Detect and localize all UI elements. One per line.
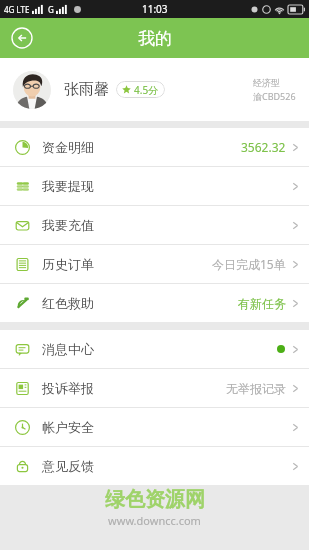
staticText: 我要提现 [42,178,94,194]
staticText: 帐户安全 [42,419,94,435]
staticText: 意见反馈 [42,458,94,474]
staticText: 历史订单 [42,256,94,272]
button[interactable]: 历史订单 [0,245,309,283]
button[interactable]: 消息中心 [0,330,309,368]
staticText: 消息中心 [42,341,94,357]
staticText: 渝CBD526 [253,90,296,102]
button[interactable]: 意见反馈 [0,447,309,485]
staticText: 红色救助 [42,295,94,311]
button[interactable]: 帐户安全 [0,408,309,446]
staticText: 资金明细 [42,139,94,155]
staticText: 经济型 [253,77,280,88]
staticText: 我要充值 [42,217,94,233]
staticText: 4G LTE [4,4,30,15]
staticText: G [48,4,54,15]
staticText: 绿色资源网 [105,487,205,512]
staticText: 3562.32 [241,139,286,155]
staticText: 今日完成15单 [212,256,286,272]
staticText: 有新任务 [238,296,286,311]
staticText: 11:03 [142,2,168,16]
staticText: 我的 [138,28,172,49]
staticText: 4.5分 [134,83,159,97]
staticText: 张雨馨 [64,80,109,99]
button[interactable]: Profile photo [0,58,309,121]
staticText: 无举报记录 [226,381,286,396]
button[interactable]: Profile photo [13,71,51,109]
button[interactable]: 投诉举报 [0,369,309,407]
staticText: www.downcc.com [108,513,201,528]
button[interactable]: 4.5分 [116,81,165,98]
staticText: 投诉举报 [42,380,94,396]
button[interactable]: 我要提现 [0,167,309,205]
button[interactable]: 资金明细 [0,128,309,166]
button[interactable]: 红色救助 [0,284,309,322]
button[interactable]: Back [8,24,36,52]
button[interactable]: 我要充值 [0,206,309,244]
